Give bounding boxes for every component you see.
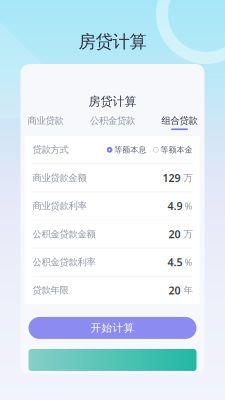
staticText: 年 xyxy=(180,284,192,296)
staticText: 公积金贷款 xyxy=(90,115,135,126)
button[interactable]: 商业贷款利率 xyxy=(25,192,199,220)
staticText: 4.9 xyxy=(167,199,182,213)
button[interactable]: 组合贷款 xyxy=(161,115,197,130)
staticText: 开始计算 xyxy=(90,321,134,334)
staticText: 商业贷款金额 xyxy=(32,172,86,184)
staticText: 4.5 xyxy=(167,255,182,269)
button[interactable]: 贷款方式 xyxy=(25,136,199,163)
button[interactable]: 商业贷款 xyxy=(27,115,63,130)
staticText: % xyxy=(182,256,192,268)
button[interactable]: 开始计算 xyxy=(28,317,196,339)
staticText: 公积金贷款利率 xyxy=(32,256,95,268)
staticText: 房贷计算 xyxy=(78,31,146,52)
staticText: 等额本金 xyxy=(160,145,192,155)
button[interactable]: 等额本息 xyxy=(107,145,146,155)
staticText: 万 xyxy=(180,228,192,240)
button[interactable]: 公积金贷款利率 xyxy=(25,248,199,276)
button[interactable]: 公积金贷款金额 xyxy=(25,220,199,248)
staticText: 等额本息 xyxy=(114,145,146,155)
staticText: 万 xyxy=(180,172,192,184)
staticText: 20 xyxy=(168,227,180,241)
button[interactable]: 公积金贷款 xyxy=(90,115,135,130)
staticText: 129 xyxy=(162,171,180,185)
staticText: 贷款方式 xyxy=(32,144,68,155)
staticText: 商业贷款利率 xyxy=(32,200,86,212)
staticText: 房贷计算 xyxy=(88,94,136,109)
button[interactable]: 商业贷款金额 xyxy=(25,164,199,192)
button[interactable]: 贷款年限 xyxy=(25,277,199,304)
staticText: 组合贷款 xyxy=(161,115,197,126)
button[interactable]: 等额本金 xyxy=(153,145,192,155)
staticText: 20 xyxy=(168,283,180,297)
staticText: 公积金贷款金额 xyxy=(32,228,95,240)
staticText: % xyxy=(182,200,192,212)
staticText: 商业贷款 xyxy=(27,115,63,126)
staticText: 贷款年限 xyxy=(32,284,68,296)
